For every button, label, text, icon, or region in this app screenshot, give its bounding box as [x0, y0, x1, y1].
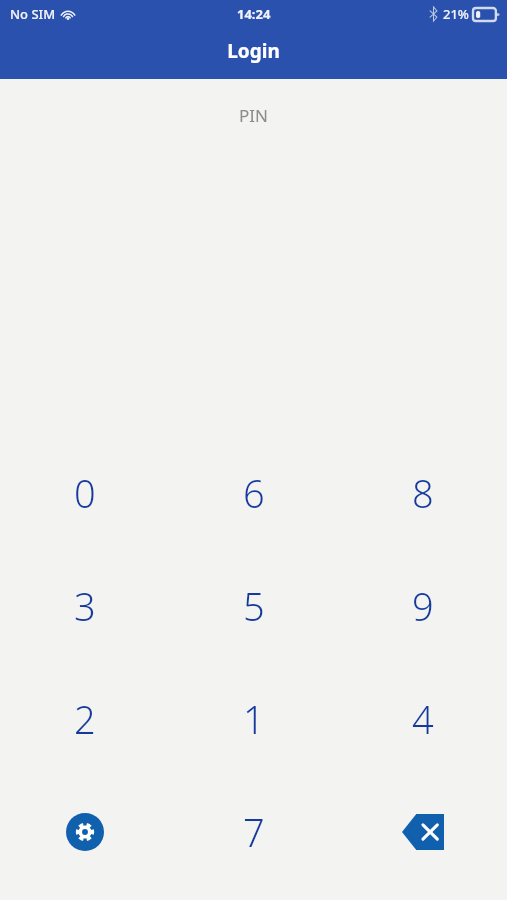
button[interactable]: 9	[375, 556, 471, 656]
button[interactable]: 6	[206, 443, 302, 543]
staticText: 14:24	[237, 5, 271, 23]
staticText: 0	[74, 467, 96, 519]
button[interactable]: 8	[375, 443, 471, 543]
staticText: 7	[243, 806, 265, 858]
button[interactable]: 7	[206, 782, 302, 882]
button[interactable]: 1	[206, 669, 302, 769]
staticText: 6	[243, 467, 265, 519]
button[interactable]: 3	[37, 556, 133, 656]
staticText: Login	[0, 38, 507, 64]
staticText: 21%	[443, 5, 469, 23]
staticText: 9	[412, 580, 434, 632]
staticText: PIN	[0, 104, 507, 127]
staticText: 4	[412, 693, 434, 745]
staticText: 2	[74, 693, 96, 745]
staticText: No SIM	[10, 5, 56, 23]
button[interactable]: Backspace	[391, 800, 455, 864]
button[interactable]: Settings	[53, 800, 117, 864]
staticText: 1	[243, 693, 265, 745]
button[interactable]: 0	[37, 443, 133, 543]
staticText: 8	[412, 467, 434, 519]
staticText: 3	[74, 580, 96, 632]
button[interactable]: 5	[206, 556, 302, 656]
button[interactable]: 2	[37, 669, 133, 769]
button[interactable]: 4	[375, 669, 471, 769]
staticText: 5	[243, 580, 265, 632]
